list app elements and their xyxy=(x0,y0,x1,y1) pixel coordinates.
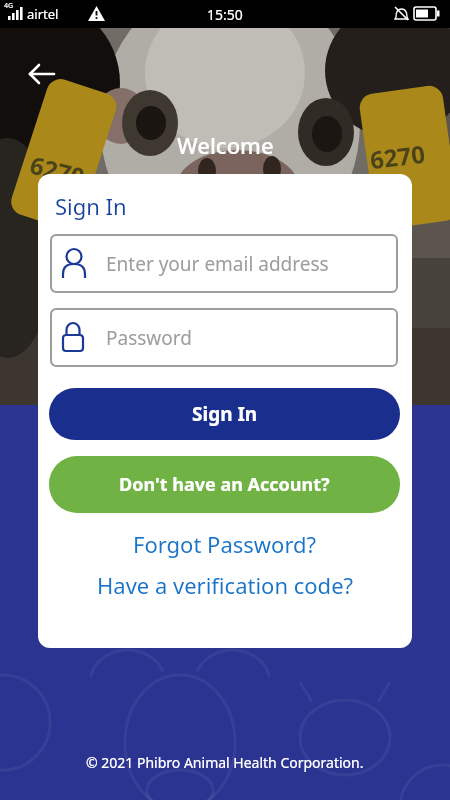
button[interactable]: Forgot Password? xyxy=(133,529,317,559)
staticText: airtel xyxy=(27,5,59,23)
staticText: 15:50 xyxy=(207,5,243,24)
staticText: Sign In xyxy=(192,401,258,427)
button[interactable]: Have a verification code? xyxy=(97,570,354,600)
button[interactable]: Enter your email address xyxy=(50,234,398,293)
button[interactable]: Password xyxy=(50,308,398,367)
staticText: Enter your email address xyxy=(106,251,329,277)
staticText: © 2021 Phibro Animal Health Corporation. xyxy=(86,753,364,772)
staticText: Sign In xyxy=(55,191,127,221)
staticText: 6270 xyxy=(27,148,88,193)
staticText: Welcome xyxy=(177,130,274,160)
staticText: 6270 xyxy=(368,137,427,176)
staticText: 4G xyxy=(4,1,14,11)
button[interactable]: Don't have an Account? xyxy=(49,456,400,513)
staticText: Password xyxy=(106,325,192,351)
button[interactable] xyxy=(18,52,66,96)
button[interactable]: Sign In xyxy=(49,388,400,440)
staticText: Don't have an Account? xyxy=(119,472,330,497)
